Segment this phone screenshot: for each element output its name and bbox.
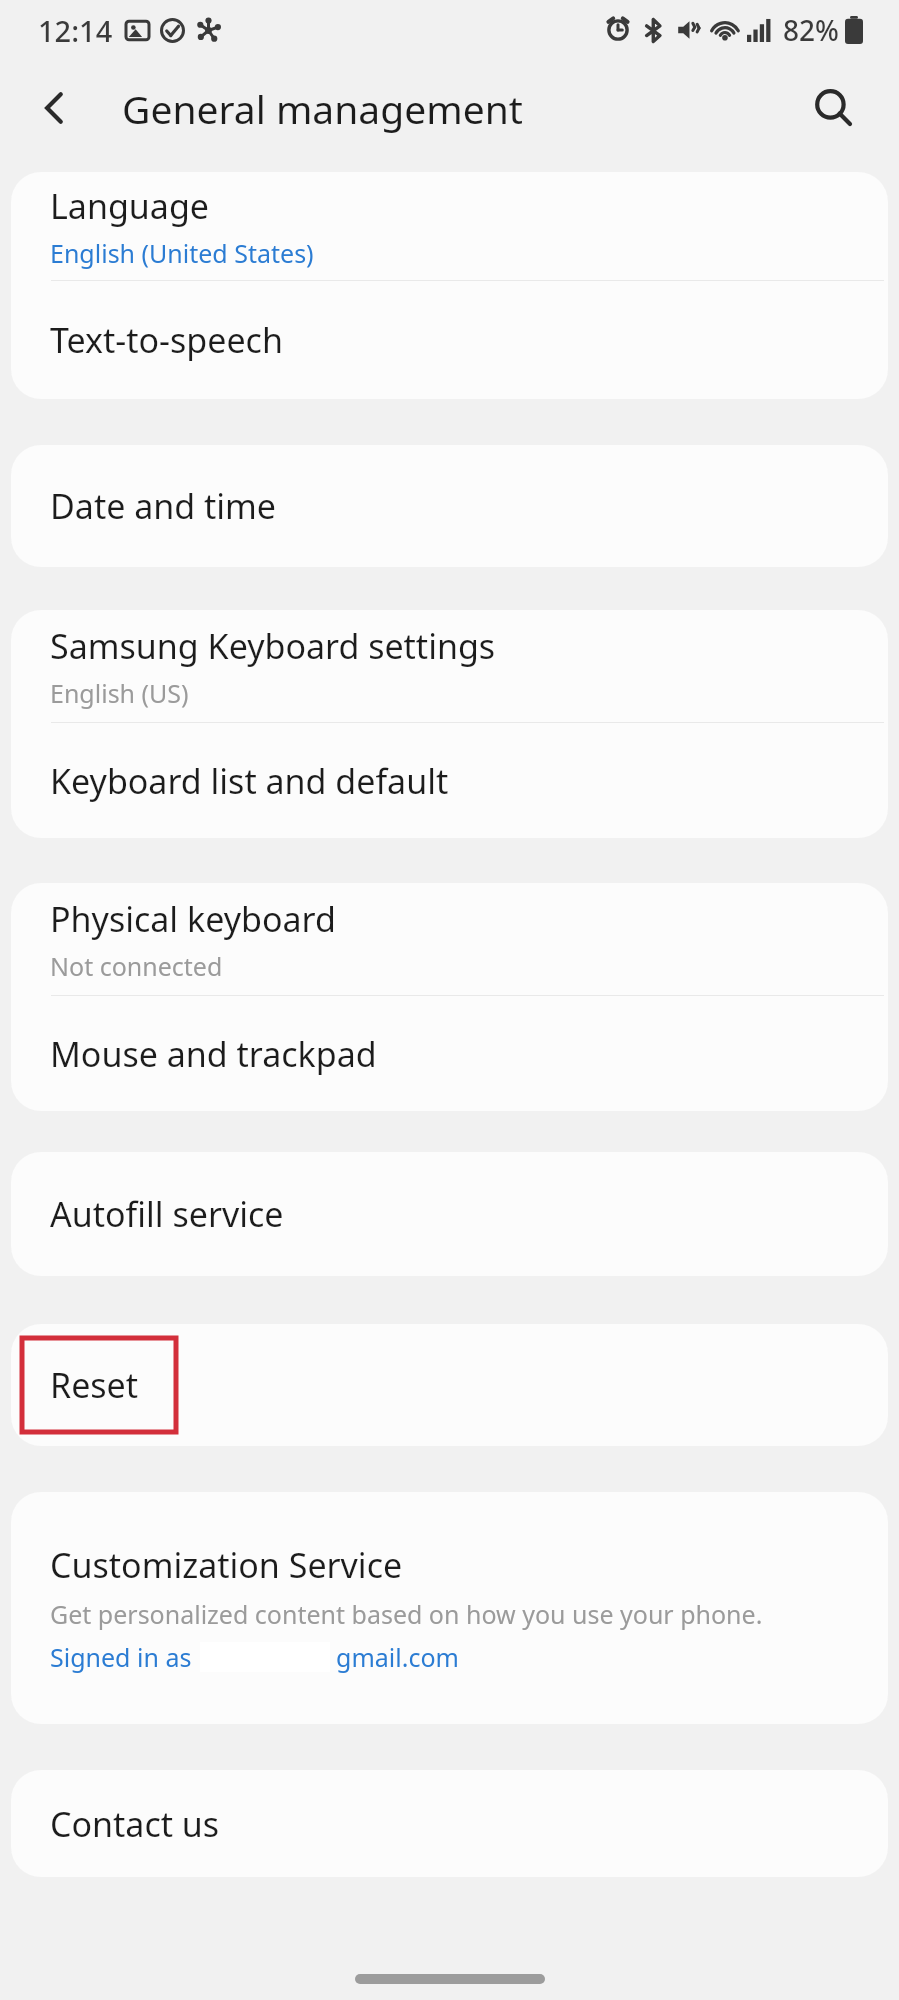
staticText: English (United States) xyxy=(50,236,314,270)
staticText: Physical keyboard xyxy=(50,896,336,942)
button[interactable]: Autofill service xyxy=(11,1152,888,1276)
staticText: gmail.com xyxy=(336,1640,459,1674)
button[interactable]: Text-to-speech xyxy=(11,281,888,399)
staticText: English (US) xyxy=(50,676,189,710)
staticText: Mouse and trackpad xyxy=(50,1031,377,1077)
staticText: Not connected xyxy=(50,949,223,983)
staticText: Language xyxy=(50,183,209,229)
button[interactable]: Keyboard list and default xyxy=(11,723,888,838)
button[interactable]: Back xyxy=(20,73,90,143)
button[interactable]: Samsung Keyboard settings xyxy=(11,610,888,722)
staticText: General management xyxy=(122,82,523,135)
staticText: Keyboard list and default xyxy=(50,758,449,804)
button[interactable]: Search xyxy=(797,71,871,145)
staticText: Autofill service xyxy=(50,1191,284,1237)
staticText: 82% xyxy=(783,11,839,49)
staticText: 12:14 xyxy=(38,11,113,50)
button[interactable]: Customization Service xyxy=(11,1492,888,1724)
button[interactable]: Mouse and trackpad xyxy=(11,996,888,1111)
staticText: Get personalized content based on how yo… xyxy=(50,1597,763,1631)
button[interactable]: Physical keyboard xyxy=(11,883,888,995)
staticText: Date and time xyxy=(50,483,277,529)
button[interactable]: Contact us xyxy=(11,1770,888,1877)
staticText: Customization Service xyxy=(50,1542,403,1588)
button[interactable]: Date and time xyxy=(11,445,888,567)
staticText: Samsung Keyboard settings xyxy=(50,623,496,669)
staticText: Signed in as xyxy=(50,1640,192,1674)
button[interactable]: Language xyxy=(11,172,888,280)
staticText: Reset xyxy=(50,1362,139,1408)
staticText: Text-to-speech xyxy=(50,317,283,363)
staticText: Contact us xyxy=(50,1801,220,1847)
button[interactable]: Reset xyxy=(11,1324,888,1446)
